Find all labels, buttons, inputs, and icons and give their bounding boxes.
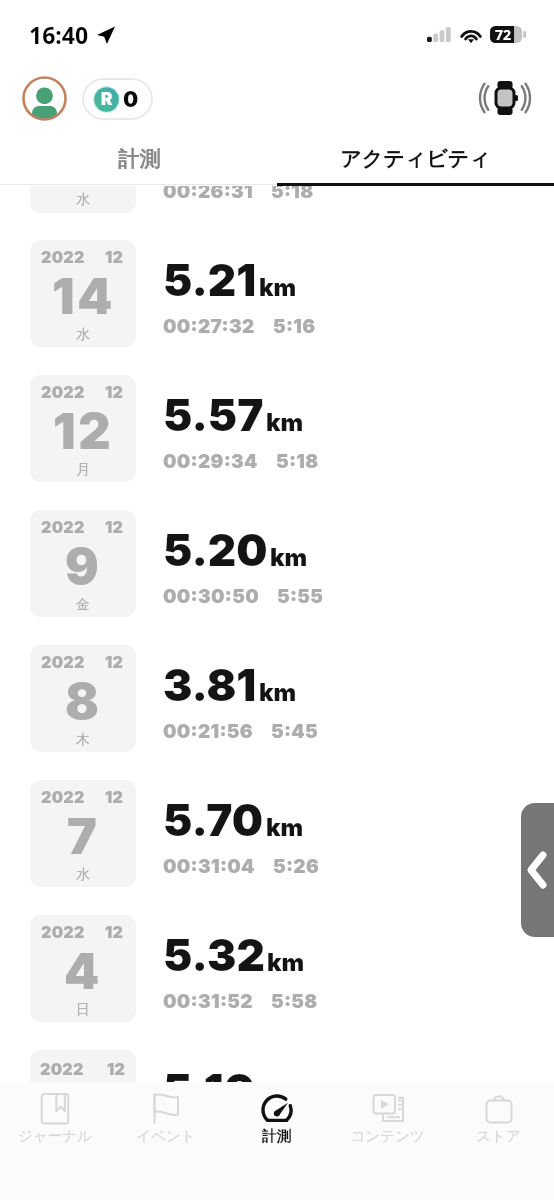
staticText: 日 xyxy=(76,1001,90,1019)
staticText: 5:16 xyxy=(273,315,316,338)
button[interactable]: ジャーナル xyxy=(0,1082,110,1200)
staticText: 2022 xyxy=(40,1059,84,1078)
staticText: 72 xyxy=(495,25,512,44)
staticText: 0 xyxy=(123,86,139,112)
button[interactable]: イベント xyxy=(110,1082,221,1200)
staticText: km xyxy=(270,543,308,572)
button[interactable]: 2022 xyxy=(0,240,554,347)
button[interactable]: Watch xyxy=(478,71,532,125)
button[interactable]: 2022 xyxy=(30,1050,136,1157)
staticText: km xyxy=(266,408,304,437)
staticText: km xyxy=(266,813,304,842)
staticText: 2022 xyxy=(41,652,85,671)
button[interactable]: コンテンツ xyxy=(332,1082,443,1200)
staticText: 水 xyxy=(76,191,90,209)
staticText: 5.70 xyxy=(163,793,264,846)
staticText: 月 xyxy=(76,461,90,479)
staticText: 12 xyxy=(53,401,114,461)
staticText: 16:40 xyxy=(29,19,89,50)
staticText: 00:21:56 xyxy=(163,720,253,743)
staticText: 2022 xyxy=(41,382,85,401)
staticText: 12 xyxy=(105,247,124,266)
staticText: 7 xyxy=(67,806,100,866)
staticText: 8 xyxy=(65,671,102,731)
staticText: 2022 xyxy=(41,247,85,266)
staticText: km xyxy=(259,678,297,707)
staticText: km xyxy=(259,273,297,302)
staticText: アクティビティ xyxy=(340,146,491,172)
staticText: 00:27:32 xyxy=(163,315,255,338)
staticText: 00:31:04 xyxy=(163,855,255,878)
button[interactable]: 2022 xyxy=(0,375,554,482)
staticText: ジャーナル xyxy=(18,1127,92,1145)
staticText: 木 xyxy=(76,731,90,749)
button[interactable]: Open panel xyxy=(521,803,554,937)
staticText: ストア xyxy=(476,1127,521,1145)
staticText: 12 xyxy=(105,922,124,941)
button[interactable]: Profile xyxy=(22,76,67,121)
staticText: 12 xyxy=(105,517,124,536)
staticText: 00:26:31 xyxy=(163,180,253,203)
staticText: 2022 xyxy=(41,787,85,806)
staticText: R xyxy=(101,89,113,110)
staticText: 水 xyxy=(76,326,90,344)
staticText: 5.20 xyxy=(163,523,268,576)
staticText: 5:58 xyxy=(271,990,318,1013)
staticText: 5.10 xyxy=(163,1063,255,1116)
staticText: 14 xyxy=(52,266,115,326)
button[interactable]: R xyxy=(82,78,153,120)
staticText: 計測 xyxy=(262,1127,291,1145)
staticText: 5.21 xyxy=(163,253,257,306)
staticText: 2022 xyxy=(41,922,85,941)
staticText: 5:18 xyxy=(276,450,319,473)
staticText: 5:55 xyxy=(277,585,324,608)
staticText: 5:18 xyxy=(271,180,314,203)
button[interactable]: 計測 xyxy=(221,1082,332,1200)
staticText: 00:29:34 xyxy=(163,450,258,473)
staticText: 水 xyxy=(76,866,90,884)
staticText: 計測 xyxy=(118,146,160,172)
staticText: 5.32 xyxy=(163,928,265,981)
button[interactable]: 2022 xyxy=(0,510,554,617)
staticText: 12 xyxy=(105,787,124,806)
button[interactable]: 水 xyxy=(30,106,136,213)
staticText: 2022 xyxy=(41,517,85,536)
staticText: 9 xyxy=(65,536,102,596)
staticText: 12 xyxy=(105,652,124,671)
staticText: 4 xyxy=(64,941,102,1001)
staticText: 00:31:52 xyxy=(163,990,253,1013)
staticText: 12 xyxy=(107,1059,126,1078)
button[interactable]: 2022 xyxy=(0,645,554,752)
staticText: km xyxy=(257,1083,295,1112)
staticText: 3.81 xyxy=(163,658,257,711)
staticText: イベント xyxy=(136,1127,196,1145)
staticText: 5:26 xyxy=(273,855,320,878)
staticText: 5:45 xyxy=(271,720,318,743)
staticText: 金 xyxy=(76,596,90,614)
staticText: km xyxy=(267,948,305,977)
button[interactable]: 計測 xyxy=(0,134,277,184)
staticText: 00:30:50 xyxy=(163,585,259,608)
button[interactable]: アクティビティ xyxy=(277,134,554,184)
button[interactable]: 2022 xyxy=(0,915,554,1022)
button[interactable]: ストア xyxy=(443,1082,554,1200)
staticText: 5.57 xyxy=(163,388,264,441)
staticText: コンテンツ xyxy=(350,1127,425,1145)
staticText: 12 xyxy=(105,382,124,401)
button[interactable]: 2022 xyxy=(0,780,554,887)
